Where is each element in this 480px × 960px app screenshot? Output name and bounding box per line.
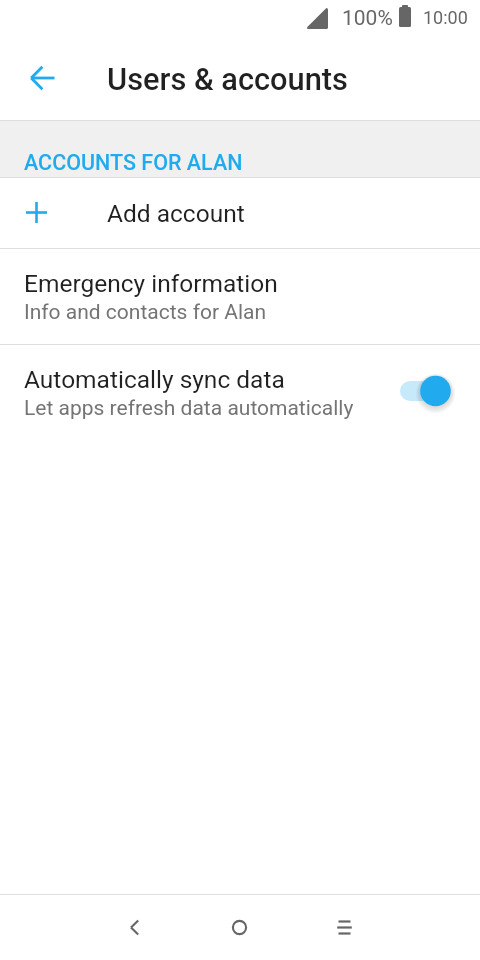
button[interactable]: Navigate up	[9, 49, 76, 106]
button[interactable]: Back	[100, 895, 172, 960]
staticText: Emergency information	[24, 269, 278, 298]
staticText: ACCOUNTS FOR ALAN	[24, 150, 243, 175]
button[interactable]: Home	[203, 895, 275, 960]
staticText: 10:00	[423, 7, 468, 28]
staticText: Automatically sync data	[24, 365, 285, 394]
button[interactable]: Add account	[0, 178, 480, 248]
staticText: 100%	[342, 6, 393, 31]
staticText: Add account	[107, 199, 245, 228]
button[interactable]: Emergency information	[0, 249, 480, 344]
staticText: Users & accounts	[107, 61, 348, 97]
button[interactable]: Automatically sync data	[0, 345, 480, 440]
staticText: Let apps refresh data automatically	[24, 396, 354, 421]
staticText: Info and contacts for Alan	[24, 300, 267, 325]
button[interactable]: Recent apps	[308, 895, 380, 960]
